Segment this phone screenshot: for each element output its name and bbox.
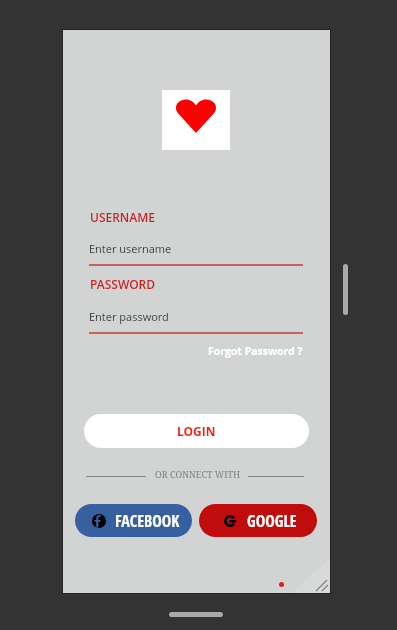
staticText: OR CONNECT WITH bbox=[155, 468, 241, 480]
staticText: Enter username bbox=[89, 241, 172, 256]
button[interactable]: LOGIN bbox=[84, 414, 309, 448]
staticText: GOOGLE bbox=[247, 510, 297, 532]
staticText: Forgot Password ? bbox=[208, 344, 303, 358]
staticText: USERNAME bbox=[90, 209, 155, 225]
button[interactable]: GOOGLE bbox=[199, 504, 317, 537]
staticText: LOGIN bbox=[177, 423, 216, 439]
staticText: Enter password bbox=[89, 309, 169, 324]
button[interactable]: Forgot Password ? bbox=[208, 343, 303, 359]
staticText: PASSWORD bbox=[90, 276, 156, 292]
other: Resize bbox=[292, 558, 330, 593]
staticText: FACEBOOK bbox=[115, 510, 180, 532]
button[interactable]: FACEBOOK bbox=[75, 504, 192, 537]
